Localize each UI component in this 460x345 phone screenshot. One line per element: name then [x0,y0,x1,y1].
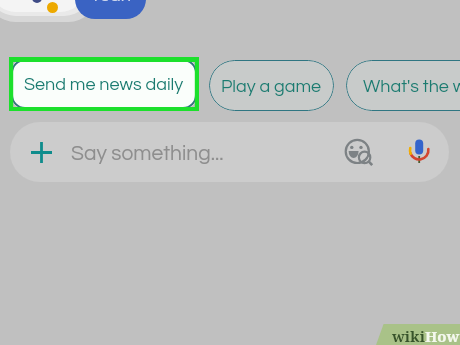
button[interactable]: What's the weather [346,60,460,111]
staticText: How [425,326,460,345]
staticText: Say something... [71,143,224,165]
staticText: Yeah [90,0,131,5]
button[interactable]: Voice input [404,133,440,169]
staticText: wiki [392,326,425,345]
staticText: Play a game [221,77,322,96]
button[interactable]: Emoji search [330,134,376,180]
staticText: What's the weather [363,77,460,96]
button[interactable]: Add [25,136,57,168]
staticText: Send me news daily [24,75,184,94]
button[interactable]: Send me news daily [9,57,199,111]
button[interactable]: Play a game [209,60,334,111]
